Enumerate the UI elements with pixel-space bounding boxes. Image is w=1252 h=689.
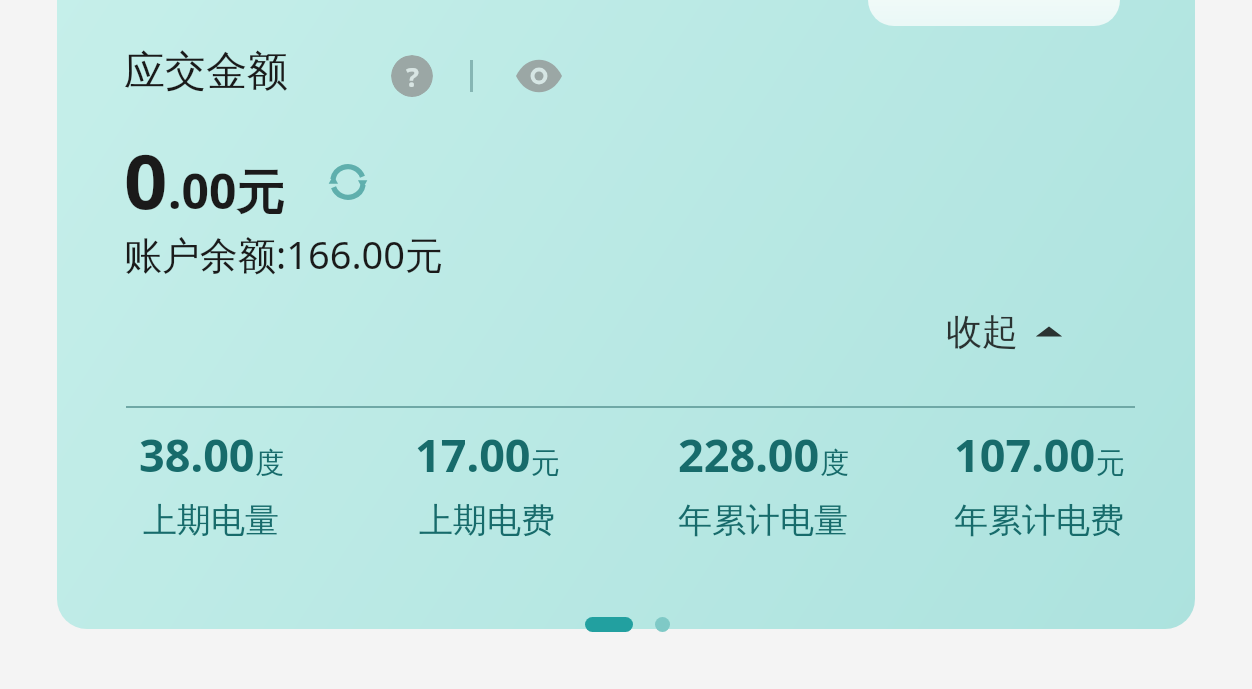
staticText: 107.00 — [954, 424, 1096, 485]
staticText: 38.00 — [139, 424, 255, 485]
button[interactable]: 显示或隐藏金额 — [513, 56, 565, 96]
button[interactable]: 228.00 — [638, 424, 888, 542]
staticText: 元 — [531, 445, 560, 482]
staticText: 度 — [255, 445, 284, 482]
button[interactable]: 107.00 — [914, 424, 1164, 542]
button[interactable]: 收起 — [946, 309, 1064, 354]
staticText: 228.00 — [678, 424, 820, 485]
button[interactable]: 38.00 — [86, 424, 336, 542]
staticText: 上期电费 — [419, 499, 555, 542]
staticText: 应交金额 — [124, 46, 288, 98]
staticText: 年累计电费 — [954, 499, 1124, 542]
staticText: 上期电量 — [143, 499, 279, 542]
staticText: 元 — [1096, 445, 1125, 482]
staticText: 17.00 — [415, 424, 531, 485]
staticText: .00元 — [168, 158, 285, 224]
staticText: 度 — [820, 445, 849, 482]
button[interactable]: 帮助 — [391, 55, 433, 97]
button[interactable] — [868, 0, 1120, 26]
staticText: 收起 — [946, 309, 1018, 354]
staticText: 年累计电量 — [678, 499, 848, 542]
staticText: 账户余额:166.00元 — [124, 228, 444, 280]
button[interactable]: 17.00 — [362, 424, 612, 542]
button[interactable]: 刷新 — [324, 158, 372, 206]
staticText: ? — [406, 58, 419, 95]
staticText: 0 — [124, 128, 168, 232]
